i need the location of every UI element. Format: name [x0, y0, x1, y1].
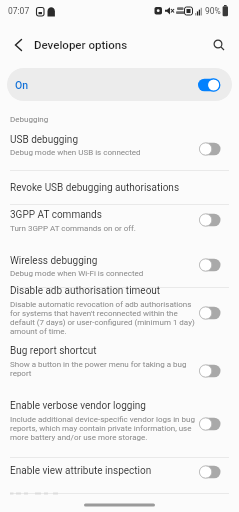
button[interactable]: Enable verbose vendor logging	[0, 397, 239, 457]
staticText: Turn 3GPP AT commands on or off.	[10, 224, 136, 233]
staticText: Disable adb authorisation timeout	[10, 285, 161, 297]
staticText: On	[15, 79, 29, 91]
button[interactable]: 3GPP AT commands	[0, 204, 239, 245]
staticText: Enable view attribute inspection	[10, 465, 152, 477]
staticText: Bug report shortcut	[10, 345, 97, 357]
button[interactable]: Wireless debugging	[0, 245, 239, 286]
staticText: Show a button in the power menu for taki…	[10, 360, 187, 378]
staticText: 90%	[205, 6, 221, 16]
button[interactable]	[2, 30, 34, 60]
staticText: Debug mode when USB is connected	[10, 148, 141, 157]
staticText: Include additional device-specific vendo…	[10, 415, 195, 442]
staticText: Debug mode when Wi-Fi is connected	[10, 269, 144, 278]
staticText: Wireless debugging	[10, 255, 98, 267]
staticText: Debugging	[10, 115, 49, 124]
staticText: USB debugging	[10, 134, 79, 146]
staticText: Disable automatic revocation of adb auth…	[10, 300, 195, 336]
staticText: Developer options	[34, 38, 128, 51]
staticText: Revoke USB debugging authorisations	[10, 182, 180, 194]
staticText: 07:07	[8, 6, 30, 16]
button[interactable]: On	[7, 68, 232, 101]
button[interactable]: Bug report shortcut	[0, 343, 239, 397]
button[interactable]: Revoke USB debugging authorisations	[0, 170, 239, 203]
button[interactable]: Enable view attribute inspection	[0, 458, 239, 492]
button[interactable]	[204, 30, 234, 60]
staticText: 3GPP AT commands	[10, 209, 102, 221]
button[interactable]: Disable adb authorisation timeout	[0, 287, 239, 343]
staticText: Enable verbose vendor logging	[10, 400, 146, 412]
button[interactable]: USB debugging	[0, 130, 239, 170]
